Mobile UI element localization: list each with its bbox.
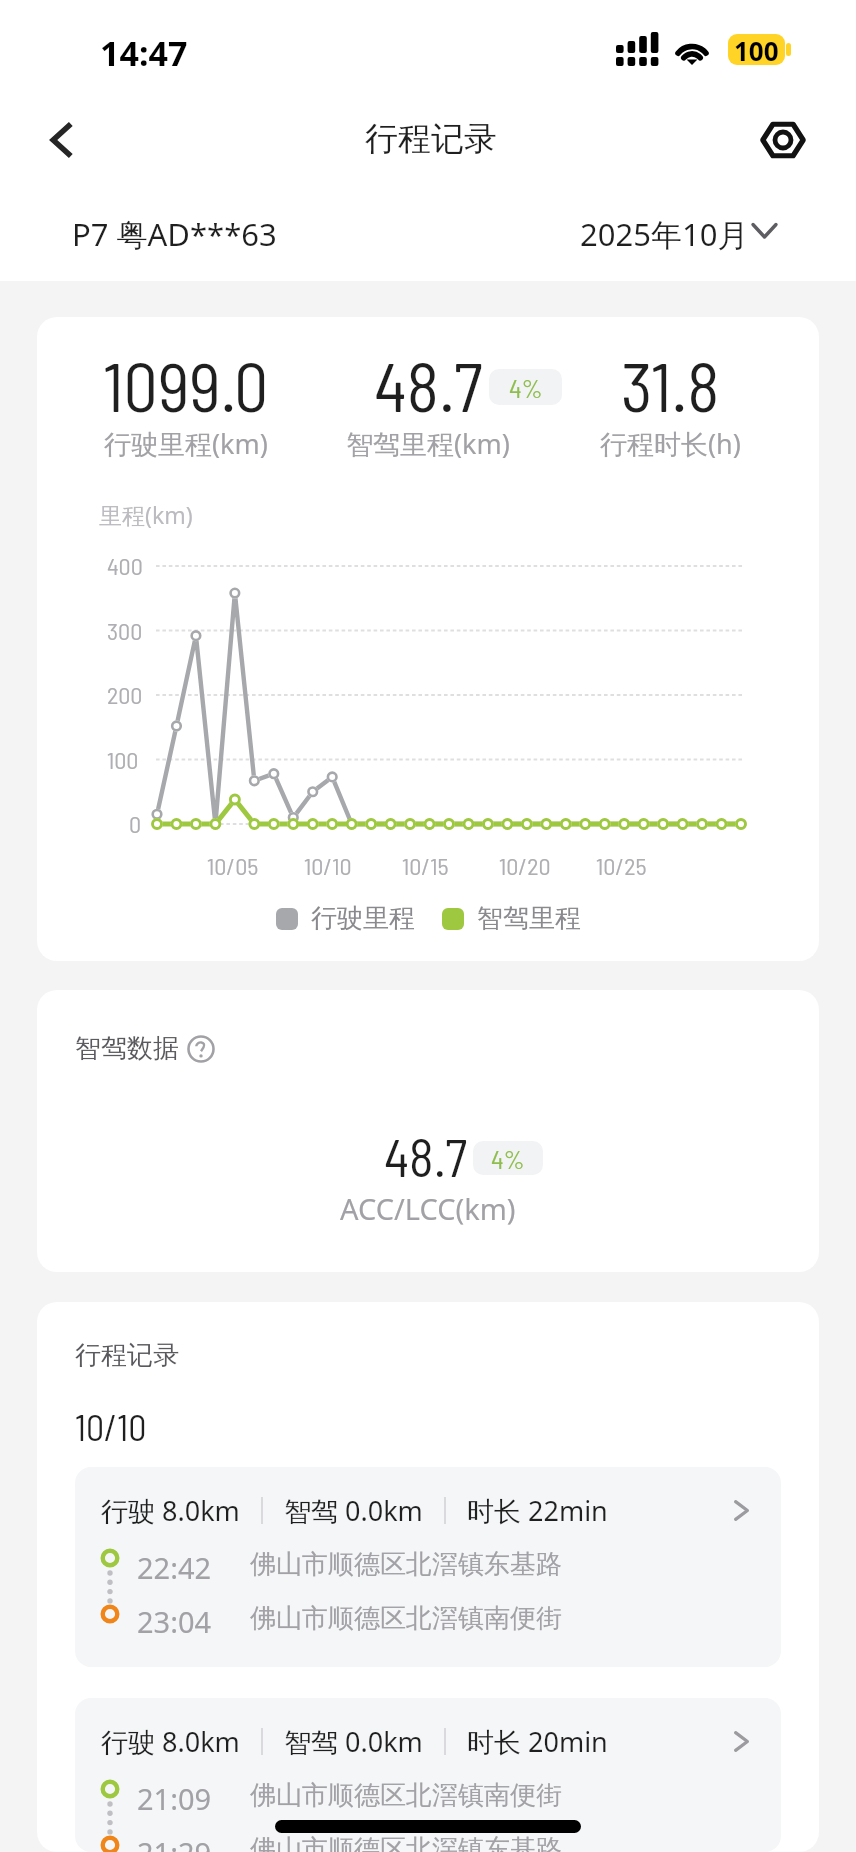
staticText: 31.8 (621, 344, 720, 426)
staticText: 10/05 (207, 851, 259, 880)
staticText: 48.7 (374, 344, 483, 426)
staticText: 10/10 (75, 1405, 147, 1448)
staticText: 里程(km) (99, 499, 193, 530)
staticText: 佛山市顺德区北滘镇南便街 (250, 1779, 562, 1812)
staticText: 10/25 (596, 851, 647, 880)
staticText: 21:29 (137, 1833, 212, 1852)
button[interactable]: 2025年10月 (570, 198, 785, 254)
staticText: 行程记录 (365, 118, 497, 160)
staticText: 智驾里程 (477, 902, 581, 935)
staticText: 4% (491, 1143, 525, 1174)
button[interactable]: Back (29, 107, 95, 173)
staticText: 智驾 0.0km (284, 1723, 423, 1760)
staticText: 智驾数据 (75, 1032, 179, 1065)
staticText: 行程记录 (75, 1339, 179, 1372)
staticText: 智驾里程(km) (346, 425, 510, 462)
staticText: 400 (107, 551, 143, 580)
staticText: 100 (734, 34, 779, 64)
staticText: 佛山市顺德区北滘镇东基路 (250, 1548, 562, 1581)
staticText: 10/15 (402, 851, 449, 880)
staticText: 21:09 (137, 1779, 212, 1818)
staticText: 佛山市顺德区北滘镇南便街 (250, 1602, 562, 1635)
staticText: 智驾 0.0km (284, 1492, 423, 1529)
staticText: 行驶 8.0km (101, 1723, 240, 1760)
staticText: 行驶里程 (311, 902, 415, 935)
staticText: 48.7 (384, 1125, 467, 1187)
button[interactable]: Settings (750, 107, 816, 173)
staticText: 10/10 (304, 851, 352, 880)
button[interactable]: 行驶 8.0km (75, 1467, 781, 1667)
staticText: P7 粤AD***63 (72, 213, 277, 255)
staticText: 行程时长(h) (600, 425, 741, 462)
staticText: 14:47 (100, 30, 188, 76)
staticText: 10/20 (499, 851, 551, 880)
staticText: 22:42 (137, 1548, 212, 1587)
button[interactable]: 行驶 8.0km (75, 1698, 781, 1852)
staticText: 100 (107, 745, 139, 774)
staticText: 2025年10月 (580, 213, 749, 255)
staticText: 行驶 8.0km (101, 1492, 240, 1529)
staticText: 300 (107, 616, 143, 645)
staticText: 时长 22min (467, 1492, 608, 1529)
staticText: 1099.0 (103, 344, 269, 426)
staticText: 200 (107, 680, 143, 709)
staticText: 行驶里程(km) (104, 425, 268, 462)
staticText: 4% (509, 372, 543, 403)
staticText: 时长 20min (467, 1723, 608, 1760)
staticText: ACC/LCC(km) (340, 1189, 516, 1228)
staticText: 佛山市顺德区北滘镇东基路 (250, 1833, 562, 1852)
staticText: 23:04 (137, 1602, 212, 1641)
staticText: 0 (129, 809, 142, 838)
